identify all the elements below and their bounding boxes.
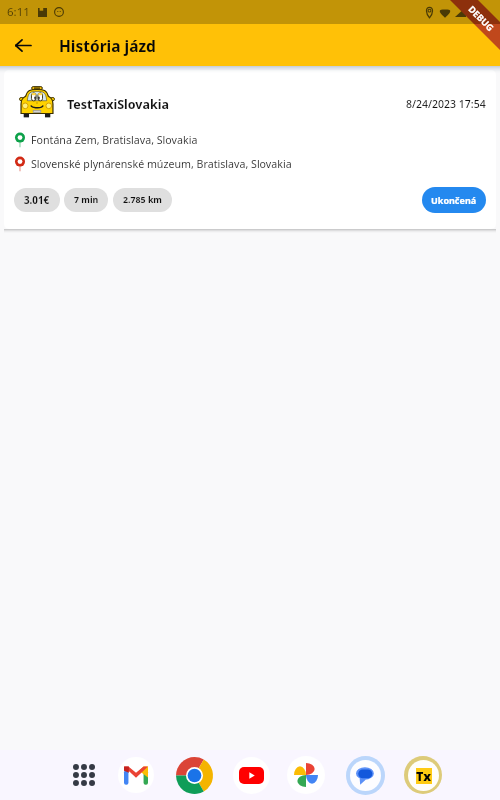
staticText: 2.785 km: [123, 194, 162, 206]
button[interactable]: Chrome: [175, 756, 213, 794]
staticText: Fontána Zem, Bratislava, Slovakia: [31, 133, 198, 148]
button[interactable]: Ukončená: [422, 187, 486, 213]
button[interactable]: Taxi app: [404, 756, 442, 794]
staticText: TestTaxiSlovakia: [67, 96, 169, 113]
button[interactable]: 7 min: [64, 188, 108, 212]
staticText: 3.01€: [24, 194, 50, 207]
button[interactable]: Messages: [346, 756, 385, 795]
button[interactable]: All apps: [64, 755, 104, 795]
button[interactable]: 3.01€: [14, 188, 60, 212]
button[interactable]: Gmail: [118, 757, 154, 793]
staticText: 7 min: [74, 194, 99, 206]
staticText: 8/24/2023 17:54: [406, 97, 486, 111]
staticText: Tx: [416, 768, 432, 784]
staticText: História jázd: [59, 35, 156, 56]
button[interactable]: YouTube: [233, 757, 270, 794]
button[interactable]: Back: [7, 29, 39, 61]
button[interactable]: 2.785 km: [113, 188, 172, 212]
button[interactable]: Photos: [287, 756, 325, 794]
staticText: Ukončená: [431, 194, 477, 206]
staticText: 6:11: [7, 4, 30, 20]
button[interactable]: TestTaxiSlovakia: [4, 70, 496, 229]
staticText: DEBUG: [466, 3, 497, 33]
staticText: Slovenské plynárenské múzeum, Bratislava…: [31, 157, 292, 172]
